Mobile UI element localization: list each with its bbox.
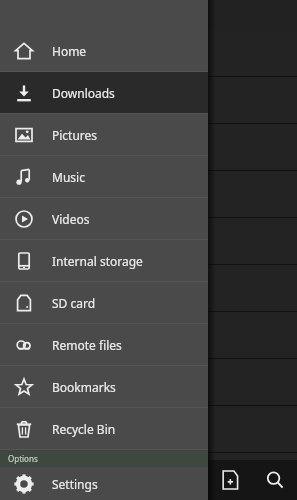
staticText: May 11, [46,481,76,492]
button[interactable]: Pictures [0,114,208,155]
staticText: 6539 [46,366,79,385]
button[interactable]: 6539 [0,265,297,311]
button[interactable]: 64-b [0,77,297,123]
button[interactable]: 6539 [0,218,297,264]
staticText: Home [52,43,87,59]
button[interactable]: Internal storage [0,240,208,281]
staticText: 64-b [46,37,76,56]
button[interactable]: 6539 [0,359,297,405]
staticText: Pictures [52,127,98,143]
staticText: May 12, [46,340,76,351]
button[interactable]: 6539 [0,171,297,217]
staticText: Jun 10, [46,105,72,116]
staticText: 6539 [46,178,79,197]
button[interactable]: SD card [0,282,208,323]
staticText: May 11, [46,434,76,445]
button[interactable]: Downloads [0,72,208,113]
staticText: Music [52,169,85,185]
staticText: 64-b [46,84,76,103]
staticText: 6539 [46,131,79,150]
staticText: May 11, [46,152,76,163]
button[interactable]: New file [208,460,252,500]
button[interactable]: Recycle Bin [0,408,208,449]
staticText: May 11, [46,293,76,304]
staticText: Downloads [52,85,115,101]
button[interactable]: Videos [0,198,208,239]
button[interactable]: 6539 [0,312,297,358]
button[interactable]: 6539 [0,453,297,499]
button[interactable]: 6539 [0,406,297,452]
staticText: 6539 [46,460,79,479]
button[interactable]: 64-b [0,30,297,76]
staticText: Remote files [52,337,122,353]
button[interactable]: 6539 [0,124,297,170]
button[interactable]: Search [252,460,297,500]
button[interactable]: Settings [0,467,208,500]
staticText: Bookmarks [52,379,116,395]
staticText: May 11, [46,387,76,398]
staticText: Settings [52,476,98,492]
button[interactable]: Bookmarks [0,366,208,407]
staticText: 6539 [46,413,79,432]
staticText: Internal storage [52,253,143,269]
staticText: Recycle Bin [52,421,116,437]
button[interactable]: Remote files [0,324,208,365]
button[interactable]: Music [0,156,208,197]
staticText: Options [8,453,38,464]
staticText: Videos [52,211,90,227]
staticText: SD card [52,295,96,311]
button[interactable]: Home [0,30,208,71]
